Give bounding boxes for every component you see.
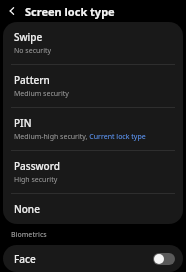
button[interactable]: Back bbox=[5, 4, 19, 18]
staticText: Pattern bbox=[14, 73, 50, 87]
staticText: Face bbox=[14, 252, 153, 266]
button[interactable]: Face bbox=[3, 245, 183, 272]
staticText: Screen lock type bbox=[25, 4, 115, 19]
staticText: None bbox=[14, 202, 40, 216]
staticText: Biometrics bbox=[11, 230, 47, 240]
button[interactable]: Swipe bbox=[3, 22, 183, 64]
staticText: High security bbox=[14, 175, 58, 185]
button[interactable]: Face toggle bbox=[153, 253, 175, 265]
staticText: Swipe bbox=[14, 30, 43, 44]
staticText: Medium security bbox=[14, 89, 69, 99]
button[interactable]: None bbox=[3, 194, 183, 224]
staticText: No security bbox=[14, 46, 52, 56]
button[interactable]: Pattern bbox=[3, 65, 183, 107]
staticText: Medium-high security, Current lock type bbox=[14, 132, 146, 142]
staticText: Password bbox=[14, 159, 60, 173]
button[interactable]: PIN bbox=[3, 108, 183, 150]
staticText: PIN bbox=[14, 116, 32, 130]
button[interactable]: Password bbox=[3, 151, 183, 193]
